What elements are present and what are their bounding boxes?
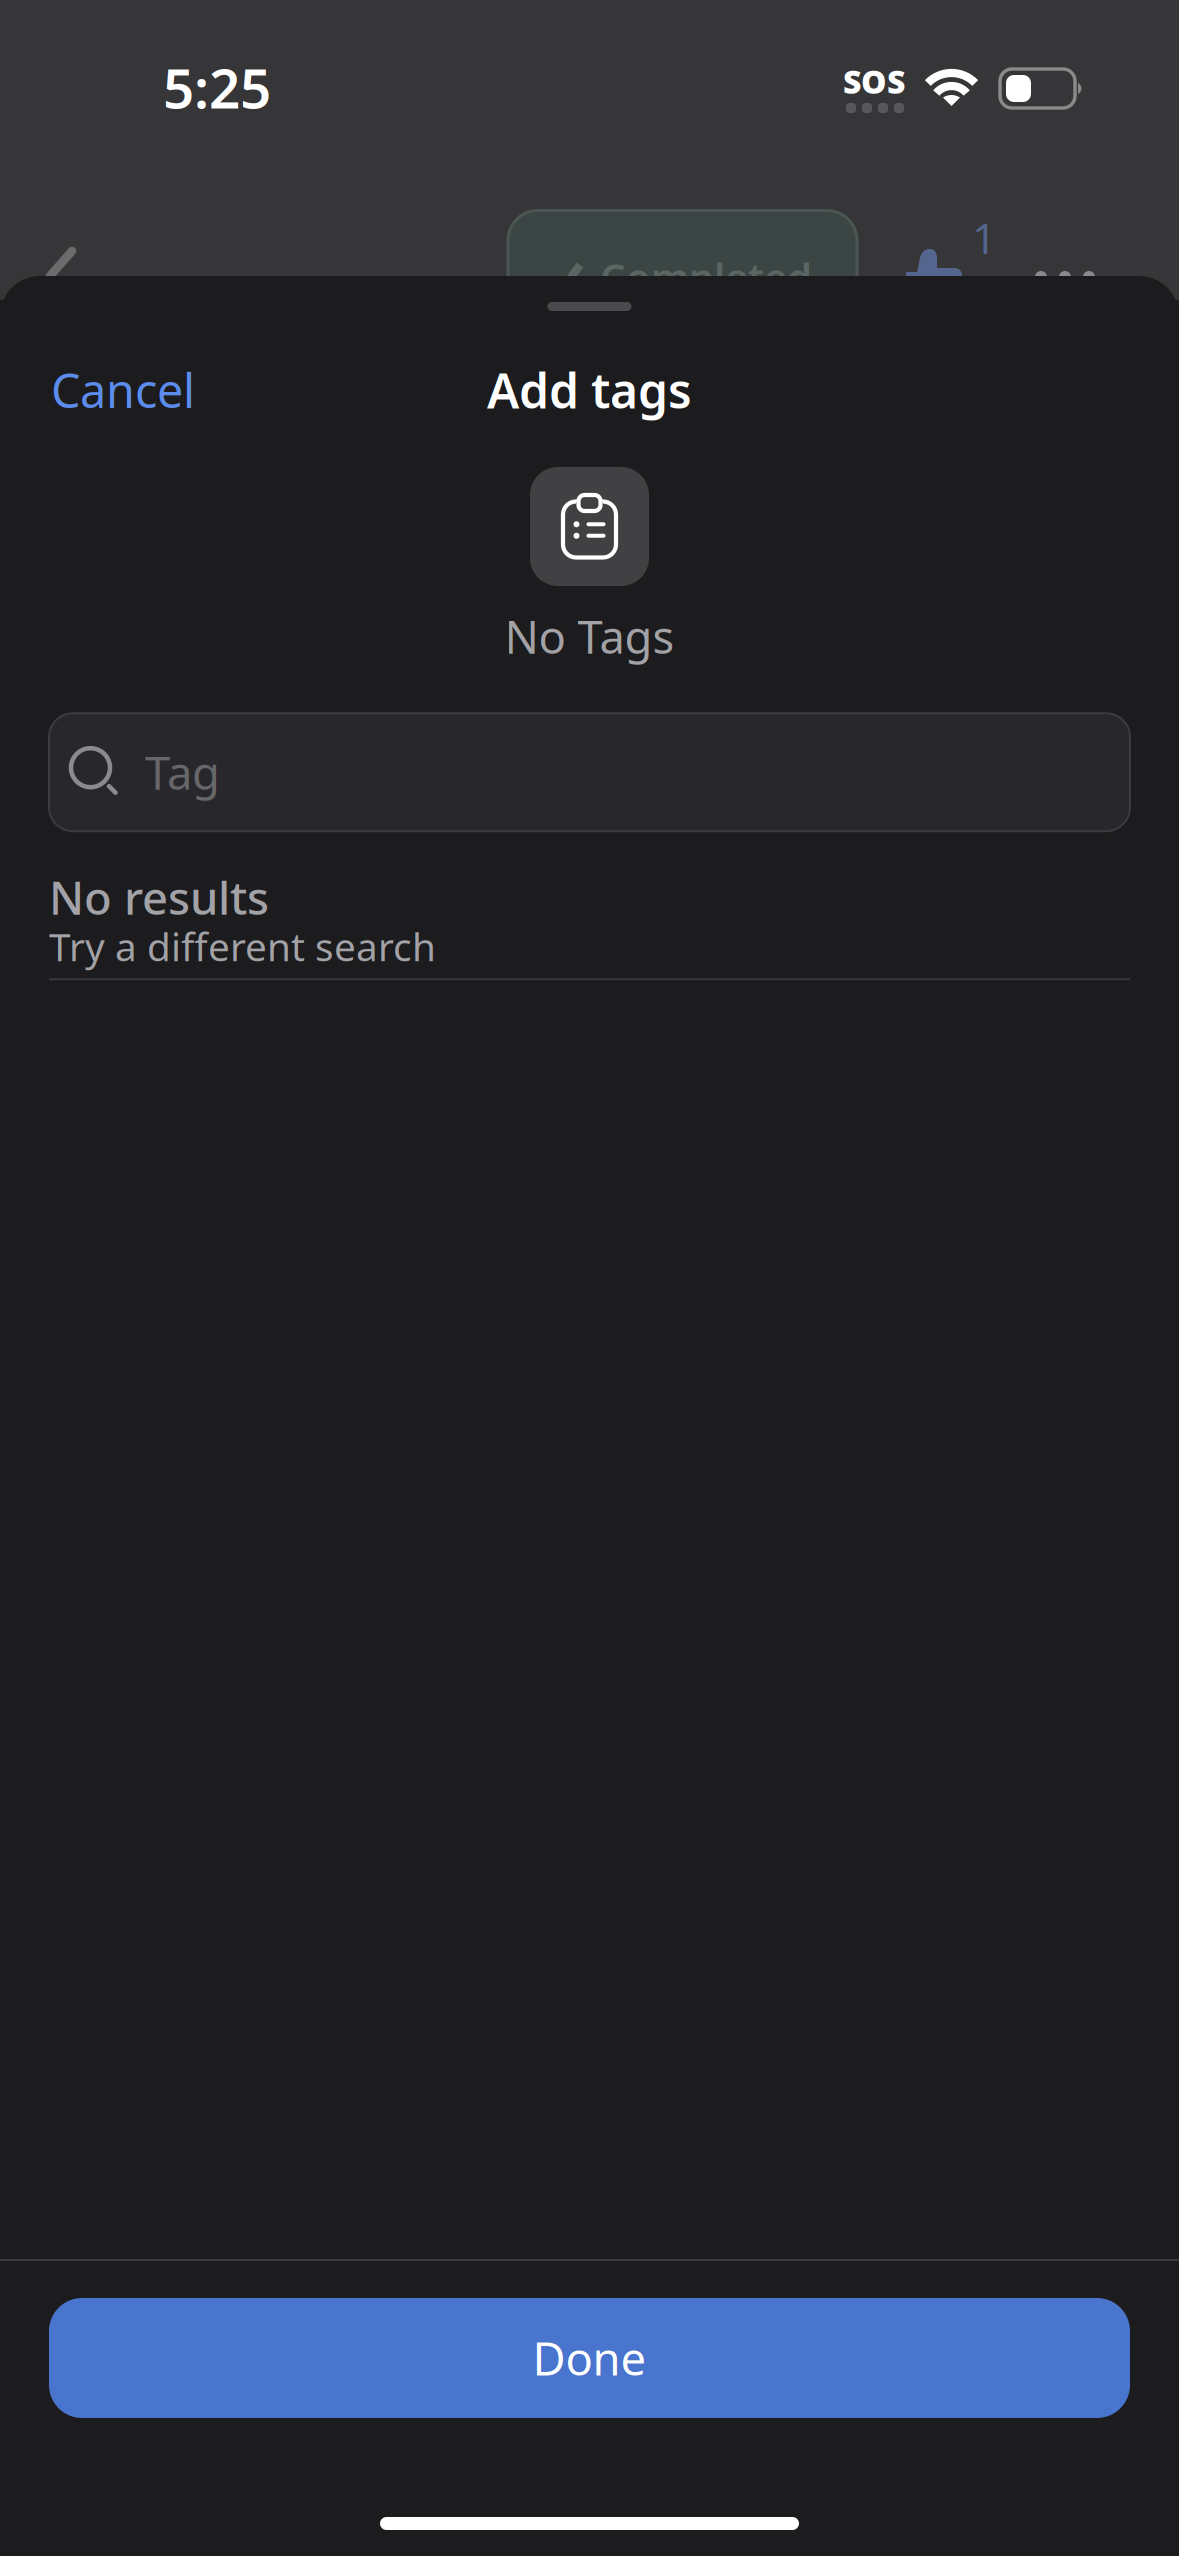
staticText: No Tags — [504, 606, 674, 666]
staticText: No results — [49, 867, 269, 927]
staticText: 5:25 — [163, 51, 271, 124]
button[interactable]: Done — [0, 2261, 1179, 2517]
staticText: 1 — [972, 209, 996, 266]
staticText: Tag — [145, 742, 220, 802]
staticText: SOS — [843, 60, 905, 102]
button[interactable]: Cancel — [43, 347, 203, 433]
staticText: Done — [532, 2328, 646, 2388]
staticText: Completed — [600, 250, 812, 304]
staticText: Try a different search — [49, 920, 436, 972]
staticText: Cancel — [51, 359, 195, 421]
staticText: Add tags — [487, 358, 692, 422]
